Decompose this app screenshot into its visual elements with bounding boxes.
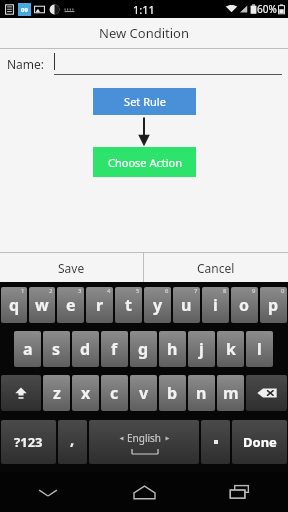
button[interactable]: m	[217, 375, 244, 411]
staticText: i	[213, 294, 218, 316]
staticText: Done	[243, 433, 277, 451]
staticText: English	[127, 431, 162, 445]
staticText: x	[81, 382, 91, 404]
button[interactable]: o	[231, 287, 258, 323]
button[interactable]: d	[72, 331, 99, 367]
button[interactable]: r	[86, 287, 113, 323]
staticText: 2	[49, 287, 53, 295]
button[interactable]: s	[43, 331, 70, 367]
button[interactable]: a	[14, 331, 41, 367]
staticText: m	[223, 382, 239, 404]
staticText: b	[167, 382, 178, 404]
button[interactable]: z	[43, 375, 70, 411]
staticText: s	[52, 338, 61, 360]
button[interactable]: f	[101, 331, 128, 367]
staticText: 5	[136, 287, 140, 295]
staticText: 60%	[257, 2, 277, 16]
button[interactable]: Space	[89, 420, 199, 464]
staticText: c	[110, 382, 119, 404]
button[interactable]: Comma	[58, 420, 87, 464]
staticText: f	[111, 338, 118, 360]
button[interactable]: e	[57, 287, 84, 323]
staticText: o	[239, 294, 250, 316]
staticText: d	[80, 338, 91, 360]
staticText: 4	[107, 287, 111, 295]
button[interactable]: Save	[0, 253, 143, 282]
staticText: Set Rule	[124, 94, 166, 109]
staticText: Cancel	[197, 260, 235, 276]
button[interactable]: Backspace	[246, 375, 287, 411]
button[interactable]: ?123	[1, 420, 56, 464]
button[interactable]: t	[115, 287, 142, 323]
button[interactable]: Shift	[1, 375, 41, 411]
staticText: j	[199, 338, 204, 360]
staticText: q	[9, 294, 20, 316]
button[interactable]: Period	[201, 420, 230, 464]
button[interactable]	[54, 53, 282, 75]
button[interactable]: Done	[232, 420, 287, 464]
staticText: v	[139, 382, 149, 404]
staticText: 6	[165, 287, 169, 295]
staticText: ,	[70, 429, 75, 449]
staticText: e	[66, 294, 76, 316]
staticText: New Condition	[99, 24, 189, 42]
button[interactable]: p	[260, 287, 287, 323]
button[interactable]: i	[202, 287, 229, 323]
staticText: u	[181, 294, 192, 316]
staticText: r	[96, 294, 104, 316]
button[interactable]: Recent apps	[192, 472, 288, 512]
button[interactable]: v	[130, 375, 157, 411]
staticText: 1:11	[133, 2, 155, 17]
button[interactable]: y	[144, 287, 171, 323]
staticText: 9	[252, 287, 256, 295]
button[interactable]: Home	[96, 472, 192, 512]
staticText: Name:	[7, 56, 45, 72]
staticText: k	[226, 338, 236, 360]
button[interactable]: k	[217, 331, 244, 367]
staticText: z	[53, 382, 61, 404]
staticText: 0	[281, 287, 285, 295]
button[interactable]: Hide keyboard	[0, 472, 96, 512]
button[interactable]: h	[159, 331, 186, 367]
staticText: Choose Action	[108, 155, 182, 170]
staticText: a	[23, 338, 33, 360]
staticText: h	[167, 338, 178, 360]
staticText: ?123	[14, 433, 43, 451]
staticText: 8	[223, 287, 227, 295]
staticText: l	[257, 338, 262, 360]
staticText: 3	[78, 287, 82, 295]
button[interactable]: u	[173, 287, 200, 323]
staticText: Save	[58, 260, 85, 276]
staticText: t	[125, 294, 132, 316]
button[interactable]: l	[246, 331, 273, 367]
button[interactable]: Choose Action	[93, 147, 196, 177]
button[interactable]: w	[29, 287, 55, 323]
button[interactable]: Cancel	[144, 253, 288, 282]
button[interactable]: c	[101, 375, 128, 411]
staticText: w	[35, 294, 49, 316]
button[interactable]: x	[72, 375, 99, 411]
staticText: g	[138, 338, 149, 360]
button[interactable]: b	[159, 375, 186, 411]
button[interactable]: j	[188, 331, 215, 367]
staticText: p	[268, 294, 279, 316]
staticText: y	[153, 294, 163, 316]
staticText: n	[196, 382, 207, 404]
staticText: 1	[21, 287, 25, 295]
button[interactable]: q	[1, 287, 27, 323]
button[interactable]: Set Rule	[93, 88, 196, 115]
button[interactable]: n	[188, 375, 215, 411]
button[interactable]: g	[130, 331, 157, 367]
staticText: 7	[194, 287, 198, 295]
staticText: 09	[21, 6, 28, 14]
